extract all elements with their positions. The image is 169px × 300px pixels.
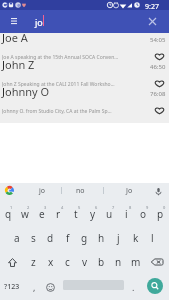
staticText: 3 xyxy=(44,205,47,210)
button[interactable]: a xyxy=(8,226,25,250)
staticText: Johnny O. from Studio City, CA at the Pa… xyxy=(2,108,124,114)
button[interactable]: w xyxy=(16,202,33,226)
staticText: 46:50 xyxy=(150,63,166,71)
button[interactable]: t xyxy=(67,202,84,226)
staticText: e xyxy=(39,207,45,221)
staticText: x xyxy=(48,255,54,269)
button[interactable]: Johnny O xyxy=(0,87,169,114)
staticText: j xyxy=(117,231,120,245)
staticText: John Z xyxy=(2,57,35,72)
staticText: jo xyxy=(35,16,43,28)
staticText: w xyxy=(21,207,29,221)
button[interactable]: k xyxy=(127,226,144,250)
button[interactable]: v xyxy=(76,250,93,274)
button[interactable]: f xyxy=(59,226,76,250)
button[interactable]: Favorite xyxy=(155,80,164,87)
button[interactable]: n xyxy=(110,250,127,274)
button[interactable]: u xyxy=(101,202,118,226)
staticText: n xyxy=(115,255,122,269)
button[interactable]: z xyxy=(25,250,42,274)
staticText: jo xyxy=(39,186,46,196)
button[interactable]: Shift xyxy=(0,250,25,274)
button[interactable]: Search xyxy=(147,278,163,294)
button[interactable]: p xyxy=(152,202,169,226)
button[interactable]: i xyxy=(118,202,135,226)
staticText: b xyxy=(98,255,105,269)
staticText: u xyxy=(106,207,113,221)
button[interactable]: e xyxy=(33,202,50,226)
staticText: s xyxy=(31,231,36,245)
staticText: 76:08 xyxy=(150,90,166,98)
staticText: k xyxy=(133,231,139,245)
staticText: c xyxy=(65,255,70,269)
button[interactable]: h xyxy=(93,226,110,250)
staticText: 54:05 xyxy=(150,36,166,44)
staticText: 9:27 xyxy=(145,2,159,12)
staticText: 5 xyxy=(78,205,81,210)
staticText: q xyxy=(5,207,12,221)
staticText: y xyxy=(90,207,96,221)
button[interactable]: l xyxy=(144,226,161,250)
button[interactable]: John Z xyxy=(0,60,169,87)
staticText: 8 xyxy=(129,205,132,210)
staticText: d xyxy=(47,231,54,245)
button[interactable]: Open navigation menu xyxy=(6,14,22,30)
staticText: 1 xyxy=(10,205,13,210)
button[interactable]: o xyxy=(135,202,152,226)
button[interactable]: jo xyxy=(26,183,59,198)
button[interactable]: g xyxy=(76,226,93,250)
staticText: i xyxy=(125,207,128,221)
staticText: l xyxy=(151,231,154,245)
staticText: z xyxy=(31,255,36,269)
button[interactable]: m xyxy=(127,250,144,274)
button[interactable]: Emoji xyxy=(42,274,58,300)
button[interactable]: j xyxy=(110,226,127,250)
staticText: 9 xyxy=(146,205,149,210)
staticText: 4 xyxy=(61,205,64,210)
button[interactable]: q xyxy=(0,202,16,226)
staticText: a xyxy=(14,231,20,245)
staticText: John Z Speaking at the CALI 2011 Fall Wo… xyxy=(2,81,124,87)
button[interactable]: , xyxy=(27,274,42,300)
staticText: no xyxy=(76,186,85,196)
staticText: Joe A xyxy=(2,30,28,45)
staticText: ?123 xyxy=(4,282,20,292)
button[interactable]: c xyxy=(59,250,76,274)
staticText: h xyxy=(98,231,105,245)
staticText: g xyxy=(81,231,88,245)
staticText: p xyxy=(157,207,164,221)
staticText: Johnny O xyxy=(2,84,50,99)
staticText: . xyxy=(132,281,135,293)
staticText: m xyxy=(131,255,141,269)
button[interactable]: Voice input xyxy=(151,184,165,198)
button[interactable]: Favorite xyxy=(155,53,164,60)
staticText: r xyxy=(56,207,61,221)
button[interactable]: x xyxy=(42,250,59,274)
staticText: 7 xyxy=(112,205,115,210)
staticText: f xyxy=(66,231,70,245)
staticText: Jo xyxy=(126,186,133,196)
button[interactable]: r xyxy=(50,202,67,226)
button[interactable]: Joe A xyxy=(0,33,169,60)
staticText: 2 xyxy=(27,205,30,210)
staticText: o xyxy=(140,207,147,221)
button[interactable]: y xyxy=(84,202,101,226)
button[interactable]: Jo xyxy=(112,183,147,198)
staticText: 0 xyxy=(163,205,166,210)
button[interactable]: Favorite xyxy=(155,107,164,114)
button[interactable]: no xyxy=(64,183,96,198)
button[interactable]: s xyxy=(25,226,42,250)
staticText: v xyxy=(82,255,88,269)
button[interactable]: ?123 xyxy=(0,274,24,300)
staticText: , xyxy=(33,281,36,293)
button[interactable]: d xyxy=(42,226,59,250)
button[interactable]: b xyxy=(93,250,110,274)
staticText: t xyxy=(74,207,78,221)
button[interactable]: . xyxy=(126,274,141,300)
staticText: Joe A speaking at the 15th Annual SOCA C… xyxy=(2,54,124,60)
button[interactable]: Clear search xyxy=(144,13,160,29)
staticText: 6 xyxy=(95,205,98,210)
button[interactable]: Backspace xyxy=(144,250,169,274)
